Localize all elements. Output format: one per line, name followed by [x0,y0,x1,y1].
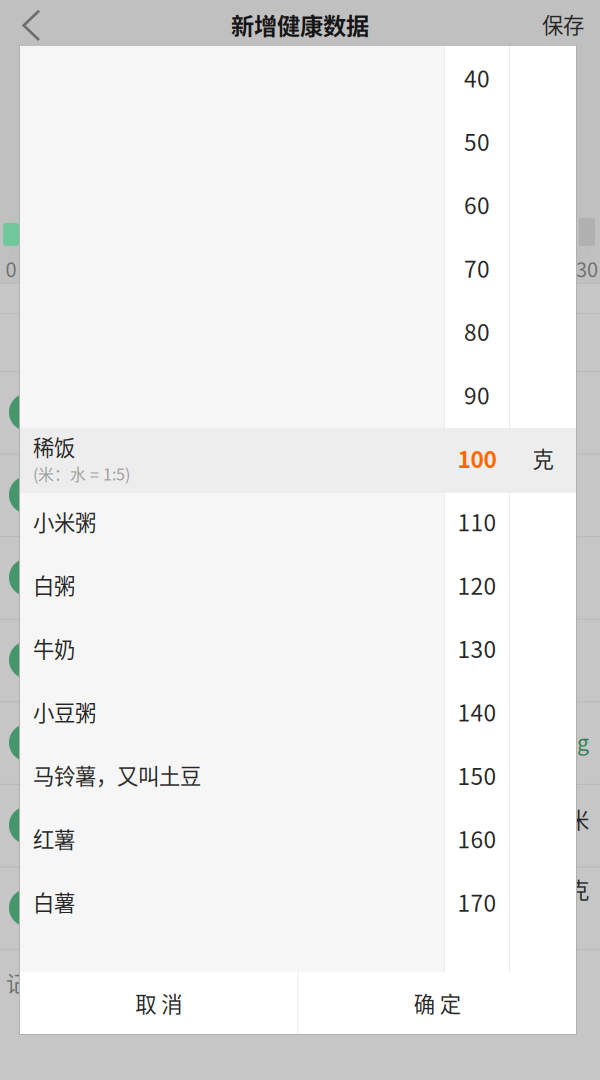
staticText: 新增健康数据 [231,8,369,41]
staticText: 120 [457,568,496,601]
staticText: 0 [5,254,16,283]
staticText: 40 [464,61,490,94]
staticText: 100 [457,442,496,474]
staticText: (米：水 = 1:5) [33,462,130,485]
staticText: 记 录 [6,967,53,998]
staticText: 白薯 [33,886,75,917]
staticText: 马铃薯，又叫土豆 [33,760,201,790]
staticText: 克 [568,873,589,904]
staticText: 米 [568,803,589,834]
staticText: 60 [464,188,490,221]
staticText: 70 [464,251,490,284]
staticText: 小米粥 [33,506,96,537]
staticText: 110 [457,505,496,538]
staticText: 保存 [542,8,584,39]
staticText: Hg [561,726,589,757]
staticText: 确 定 [414,987,461,1018]
staticText: 140 [457,695,496,728]
staticText: 50 [464,125,490,157]
staticText: 170 [457,885,496,918]
staticText: 130 [457,632,496,665]
button[interactable]: 确 定 [298,972,576,1034]
staticText: 150 [457,759,496,791]
staticText: 牛奶 [33,633,75,664]
staticText: 90 [464,378,490,411]
staticText: 80 [464,315,490,348]
staticText: 160 [457,822,496,855]
button[interactable]: 取 消 [20,972,297,1034]
staticText: 稀饭 [33,431,75,462]
button[interactable]: 保存 [510,0,600,46]
staticText: 小豆粥 [33,696,96,727]
staticText: 白粥 [33,569,75,600]
staticText: 30 [576,254,598,283]
button[interactable]: Back [0,0,62,46]
staticText: 取 消 [135,987,182,1018]
staticText: 红薯 [33,823,75,854]
staticText: 克 [532,443,553,473]
